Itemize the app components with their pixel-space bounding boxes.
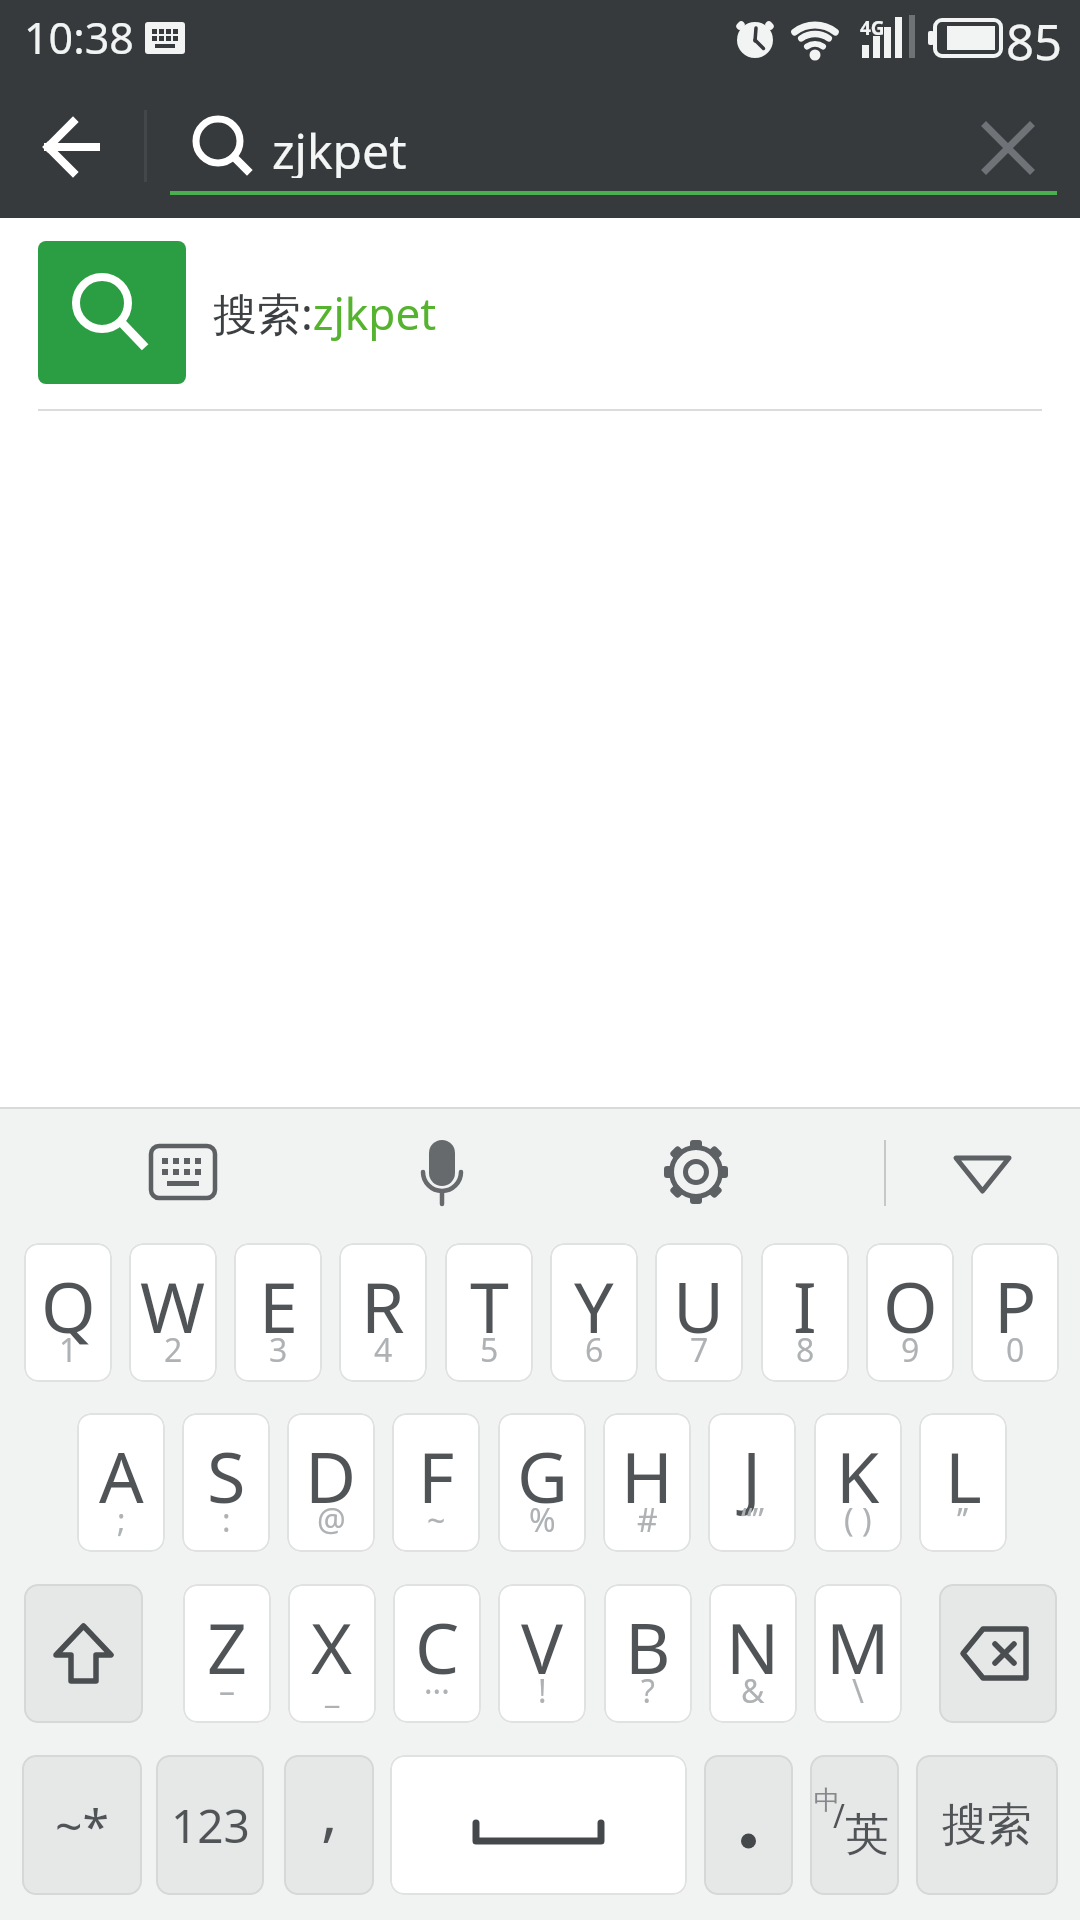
button[interactable]: [24, 98, 120, 194]
staticText: D: [305, 1428, 357, 1523]
staticText: C: [415, 1599, 460, 1694]
staticText: ~*: [55, 1793, 109, 1858]
staticText: &: [741, 1669, 765, 1713]
staticText: 5: [480, 1328, 499, 1372]
staticText: 10:38: [24, 8, 134, 64]
button[interactable]: [390, 1755, 687, 1895]
staticText: J: [742, 1428, 762, 1523]
button[interactable]: A: [77, 1413, 165, 1552]
staticText: X: [311, 1599, 353, 1694]
button[interactable]: Y: [550, 1243, 638, 1382]
button[interactable]: [704, 1755, 793, 1895]
button[interactable]: B: [604, 1584, 692, 1723]
button[interactable]: J: [708, 1413, 796, 1552]
button[interactable]: V: [498, 1584, 586, 1723]
staticText: @: [317, 1498, 346, 1542]
staticText: Q: [41, 1258, 96, 1353]
button[interactable]: ~*: [22, 1755, 142, 1895]
button[interactable]: Z: [183, 1584, 271, 1723]
button[interactable]: O: [866, 1243, 954, 1382]
staticText: 1: [59, 1328, 78, 1372]
staticText: ,: [321, 1769, 338, 1853]
button[interactable]: [939, 1584, 1057, 1723]
button[interactable]: ,: [284, 1755, 374, 1895]
staticText: 7: [690, 1328, 709, 1372]
staticText: 3: [269, 1328, 288, 1372]
staticText: “”: [741, 1498, 764, 1542]
staticText: 英: [845, 1807, 889, 1862]
staticText: 85: [1006, 8, 1063, 75]
staticText: ~: [427, 1498, 446, 1542]
button[interactable]: K: [814, 1413, 902, 1552]
button[interactable]: [972, 112, 1044, 184]
staticText: ’’: [957, 1498, 969, 1542]
staticText: L: [945, 1428, 982, 1523]
staticText: zjkpet: [272, 118, 407, 178]
staticText: B: [625, 1599, 671, 1694]
staticText: 搜索: [942, 1797, 1032, 1854]
staticText: 9: [901, 1328, 920, 1372]
button[interactable]: F: [392, 1413, 480, 1552]
staticText: 0: [1006, 1328, 1025, 1372]
staticText: 2: [164, 1328, 183, 1372]
button[interactable]: Q: [24, 1243, 112, 1382]
staticText: –: [219, 1669, 236, 1713]
button[interactable]: 搜索: [916, 1755, 1058, 1895]
staticText: Z: [207, 1599, 248, 1694]
staticText: O: [883, 1258, 938, 1353]
button[interactable]: M: [814, 1584, 902, 1723]
staticText: \: [852, 1669, 864, 1713]
button[interactable]: U: [655, 1243, 743, 1382]
staticText: N: [726, 1599, 780, 1694]
staticText: !: [538, 1669, 547, 1713]
button[interactable]: L: [919, 1413, 1007, 1552]
button[interactable]: [24, 1584, 143, 1723]
button[interactable]: W: [129, 1243, 217, 1382]
button[interactable]: [133, 1122, 233, 1222]
button[interactable]: 中: [810, 1755, 899, 1895]
button[interactable]: P: [971, 1243, 1059, 1382]
staticText: _: [325, 1669, 340, 1713]
staticText: K: [836, 1428, 880, 1523]
button[interactable]: H: [603, 1413, 691, 1552]
staticText: :: [222, 1498, 231, 1542]
staticText: G: [517, 1428, 568, 1523]
button[interactable]: 搜索:zjkpet: [0, 218, 1080, 410]
staticText: /: [833, 1794, 845, 1838]
button[interactable]: 123: [156, 1755, 264, 1895]
button[interactable]: T: [445, 1243, 533, 1382]
staticText: M: [826, 1599, 890, 1694]
button[interactable]: [932, 1122, 1032, 1222]
button[interactable]: I: [761, 1243, 849, 1382]
staticText: E: [259, 1258, 298, 1353]
staticText: 搜索:zjkpet: [213, 283, 437, 343]
staticText: H: [621, 1428, 673, 1523]
button[interactable]: [646, 1122, 746, 1222]
staticText: V: [521, 1599, 563, 1694]
button[interactable]: E: [234, 1243, 322, 1382]
staticText: ( ): [844, 1498, 872, 1542]
button[interactable]: G: [498, 1413, 586, 1552]
staticText: T: [470, 1258, 509, 1353]
staticText: 中: [814, 1784, 840, 1817]
button[interactable]: R: [339, 1243, 427, 1382]
staticText: ?: [641, 1669, 655, 1713]
button[interactable]: X: [288, 1584, 376, 1723]
staticText: ;: [117, 1498, 126, 1542]
button[interactable]: N: [709, 1584, 797, 1723]
button[interactable]: C: [393, 1584, 481, 1723]
staticText: U: [673, 1258, 725, 1353]
staticText: A: [99, 1428, 144, 1523]
staticText: 4G: [860, 15, 885, 41]
staticText: P: [994, 1258, 1037, 1353]
staticText: #: [637, 1498, 658, 1542]
button[interactable]: [392, 1122, 492, 1222]
staticText: R: [361, 1258, 405, 1353]
staticText: ···: [424, 1669, 450, 1713]
staticText: Y: [574, 1258, 614, 1353]
staticText: %: [529, 1498, 556, 1542]
staticText: 8: [796, 1328, 815, 1372]
button[interactable]: S: [182, 1413, 270, 1552]
staticText: 6: [585, 1328, 604, 1372]
button[interactable]: D: [287, 1413, 375, 1552]
